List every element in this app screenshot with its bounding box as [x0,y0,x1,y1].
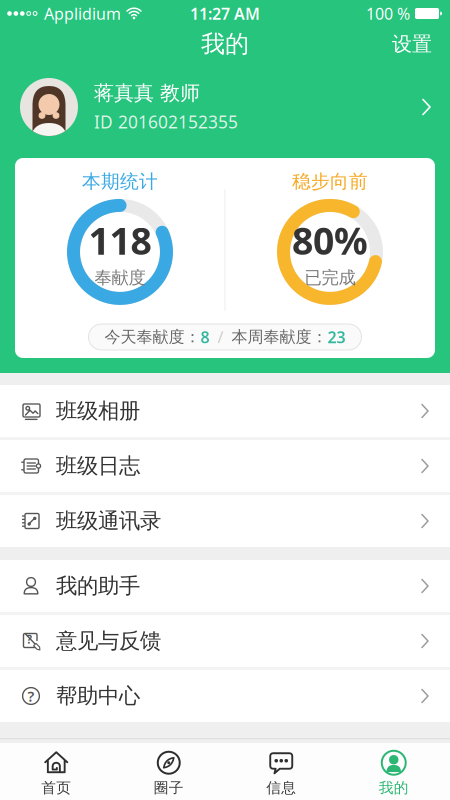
staticText: 23 [327,326,345,348]
staticText: Applidium [44,3,121,24]
staticText: 意见与反馈 [56,628,161,654]
staticText: 班级日志 [56,453,140,479]
staticText: 稳步向前 [292,170,368,193]
button[interactable]: 首页 [0,739,112,797]
staticText: 100 % [366,3,410,24]
staticText: 今天奉献度： [104,327,200,347]
staticText: 首页 [41,779,71,797]
staticText: ? [27,686,34,706]
staticText: 信息 [266,779,296,797]
button[interactable]: 我的助手 [0,560,450,612]
button[interactable]: 班级日志 [0,440,450,492]
staticText: 班级相册 [56,398,140,424]
staticText: 设置 [392,32,432,56]
button[interactable]: 信息 [225,739,337,797]
staticText: ID 201602152355 [94,110,238,133]
staticText: 已完成 [304,267,355,288]
staticText: / [209,326,231,348]
staticText: 奉献度 [94,267,145,288]
staticText: 蒋真真 教师 [94,81,200,105]
staticText: 圈子 [154,779,184,797]
staticText: 本周奉献度： [231,327,327,347]
staticText: 班级通讯录 [56,508,161,534]
button[interactable]: 我的 [337,739,450,797]
staticText: 本期统计 [82,170,158,193]
button[interactable]: 圈子 [112,739,225,797]
staticText: 8 [200,326,209,348]
button[interactable]: 班级相册 [0,385,450,437]
staticText: 我的助手 [56,573,140,599]
staticText: 我的 [379,779,409,797]
staticText: 118 [88,215,151,265]
button[interactable]: ? [0,615,450,667]
staticText: 帮助中心 [56,683,140,709]
staticText: 11:27 AM [190,3,260,24]
button[interactable]: 蒋真真 教师 [0,78,450,136]
button[interactable]: 设置 [392,32,450,56]
staticText: 我的 [201,29,249,59]
button[interactable]: 班级通讯录 [0,495,450,547]
staticText: 80% [292,215,368,265]
button[interactable]: ? [0,670,450,722]
staticText: ? [26,631,32,647]
